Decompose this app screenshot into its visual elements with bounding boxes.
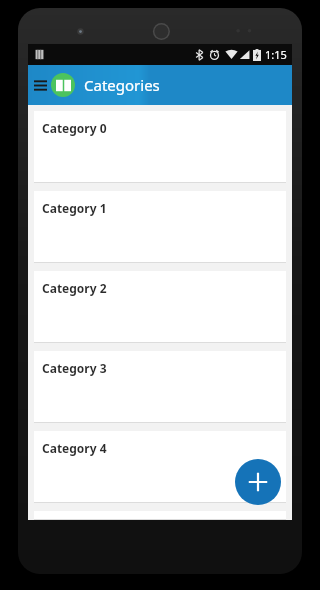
staticText: Category 3 [42,360,107,376]
button[interactable]: Add category [235,459,281,505]
button[interactable]: Category 3 [34,351,286,423]
staticText: 1:15 [265,47,287,62]
staticText: Category 1 [42,200,107,216]
button[interactable]: Category 1 [34,191,286,263]
button[interactable]: Category 0 [34,111,286,183]
staticText: Category 2 [42,280,107,296]
staticText: Category 0 [42,120,107,136]
button[interactable]: Category 2 [34,271,286,343]
button[interactable]: Category 4 [34,431,286,503]
button[interactable]: Open navigation menu [30,75,50,95]
staticText: Categories [84,75,160,95]
staticText: Category 4 [42,440,107,456]
button[interactable]: Category 5 [34,511,286,520]
